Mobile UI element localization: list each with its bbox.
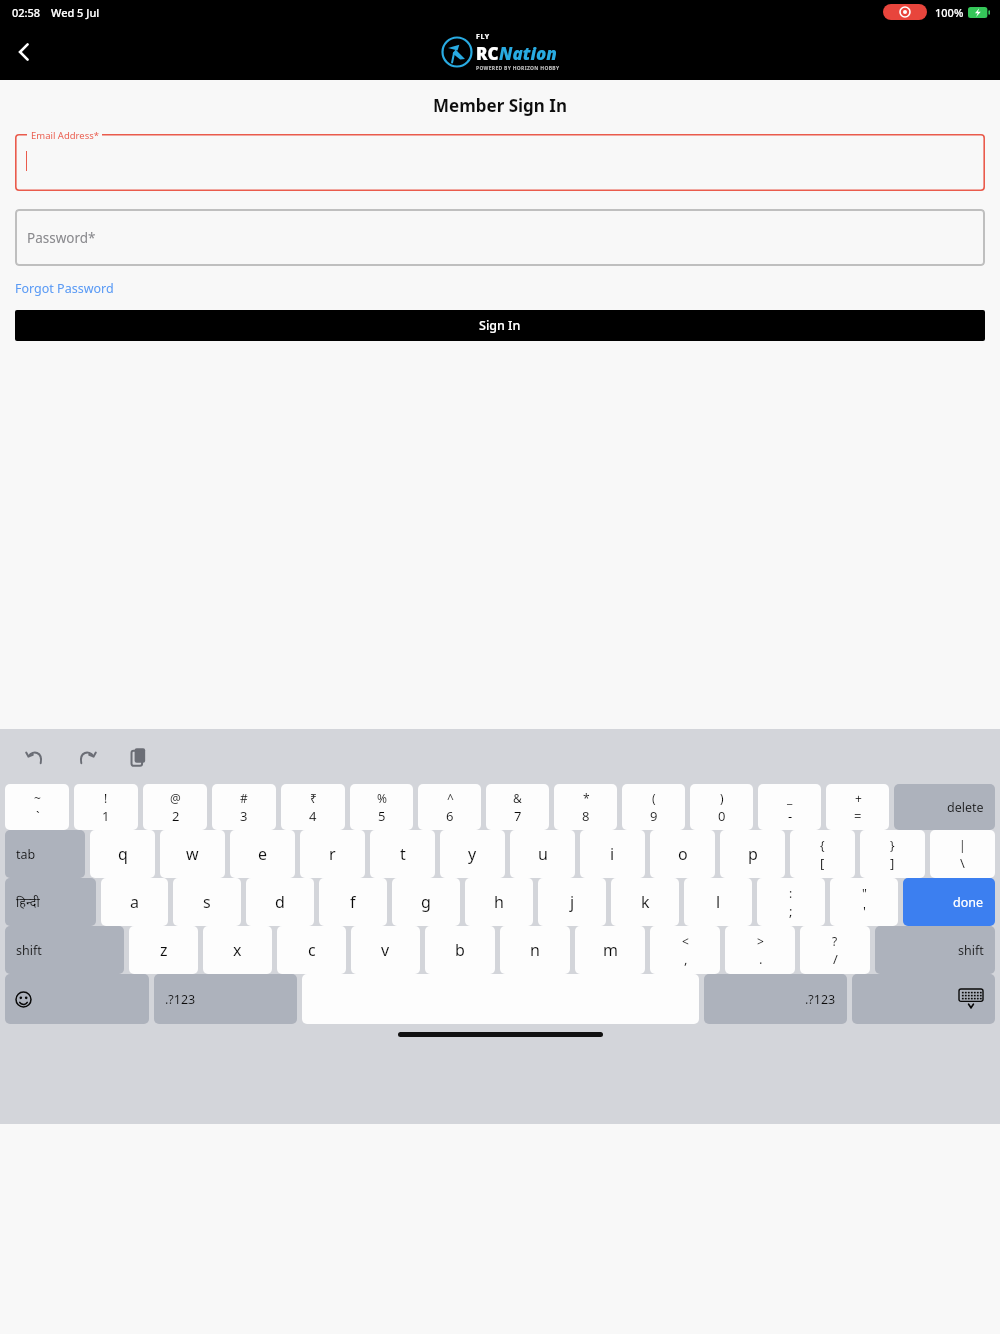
button[interactable]: Email Address* <box>15 134 985 191</box>
button[interactable]: & <box>486 784 549 830</box>
staticText: q <box>118 843 128 865</box>
button[interactable]: k <box>611 878 679 926</box>
staticText: delete <box>947 799 984 816</box>
staticText: n <box>530 939 540 961</box>
staticText: p <box>748 843 758 865</box>
button[interactable]: y <box>440 830 505 878</box>
button[interactable]: u <box>510 830 575 878</box>
button[interactable]: ! <box>74 784 138 830</box>
button[interactable]: d <box>246 878 314 926</box>
staticText: c <box>308 939 316 961</box>
button[interactable]: < <box>650 926 720 974</box>
button[interactable]: ^ <box>418 784 481 830</box>
button[interactable]: p <box>720 830 785 878</box>
staticText: Forgot Password <box>15 280 114 297</box>
button[interactable]: r <box>300 830 365 878</box>
staticText: . <box>759 950 763 968</box>
button[interactable]: c <box>277 926 346 974</box>
button[interactable]: हिन्दी <box>5 878 96 926</box>
button[interactable]: j <box>538 878 606 926</box>
button[interactable]: z <box>129 926 198 974</box>
button[interactable]: b <box>425 926 495 974</box>
staticText: Nation <box>499 42 557 65</box>
staticText: % <box>377 790 387 806</box>
button[interactable]: Forgot Password <box>15 280 114 297</box>
button[interactable]: ) <box>690 784 753 830</box>
button[interactable]: f <box>319 878 387 926</box>
button[interactable]: # <box>212 784 276 830</box>
staticText: h <box>494 891 504 913</box>
staticText: z <box>160 939 168 961</box>
button[interactable]: v <box>351 926 420 974</box>
staticText: Member Sign In <box>0 94 1000 117</box>
staticText: Sign In <box>479 317 521 334</box>
staticText: m <box>603 939 618 961</box>
button[interactable]: ? <box>800 926 870 974</box>
button[interactable]: l <box>684 878 752 926</box>
staticText: ( <box>652 790 656 806</box>
button[interactable]: q <box>90 830 155 878</box>
button[interactable]: Emoji keyboard <box>5 974 149 1024</box>
button[interactable]: Back <box>0 28 48 76</box>
button[interactable]: done <box>903 878 995 926</box>
button[interactable]: { <box>790 830 855 878</box>
button[interactable]: o <box>650 830 715 878</box>
button[interactable]: .?123 <box>154 974 297 1024</box>
staticText: 0 <box>718 807 726 825</box>
staticText: ? <box>832 933 838 949</box>
button[interactable]: x <box>203 926 272 974</box>
button[interactable]: : <box>757 878 825 926</box>
staticText: i <box>610 843 615 865</box>
staticText: 2 <box>172 807 180 825</box>
button[interactable]: t <box>370 830 435 878</box>
button[interactable]: m <box>575 926 645 974</box>
button[interactable]: h <box>465 878 533 926</box>
button[interactable]: n <box>500 926 570 974</box>
staticText: l <box>716 891 721 913</box>
staticText: 6 <box>446 807 454 825</box>
button[interactable]: delete <box>894 784 995 830</box>
button[interactable]: | <box>930 830 995 878</box>
button[interactable]: w <box>160 830 225 878</box>
staticText: 7 <box>514 807 522 825</box>
staticText: g <box>421 891 431 913</box>
staticText: Password* <box>27 229 96 247</box>
button[interactable]: ( <box>622 784 685 830</box>
button[interactable]: shift <box>875 926 995 974</box>
staticText: x <box>233 939 242 961</box>
button[interactable]: Redo <box>72 742 102 772</box>
button[interactable]: shift <box>5 926 124 974</box>
staticText: : <box>789 885 793 901</box>
button[interactable]: _ <box>758 784 821 830</box>
button[interactable]: ₹ <box>281 784 345 830</box>
button[interactable]: g <box>392 878 460 926</box>
button[interactable]: * <box>554 784 617 830</box>
button[interactable]: s <box>173 878 241 926</box>
button[interactable]: ~ <box>5 784 69 830</box>
button[interactable]: } <box>860 830 925 878</box>
staticText: } <box>890 837 895 853</box>
staticText: & <box>513 790 522 806</box>
button[interactable]: a <box>101 878 168 926</box>
button[interactable]: e <box>230 830 295 878</box>
staticText: ) <box>720 790 724 806</box>
button[interactable]: Sign In <box>15 310 985 341</box>
button[interactable]: % <box>350 784 413 830</box>
button[interactable]: Hide keyboard <box>852 974 995 1024</box>
button[interactable]: " <box>830 878 898 926</box>
staticText: / <box>833 950 838 968</box>
staticText: shift <box>16 942 42 959</box>
button[interactable]: i <box>580 830 645 878</box>
button[interactable]: > <box>725 926 795 974</box>
button[interactable]: tab <box>5 830 85 878</box>
button[interactable]: .?123 <box>704 974 847 1024</box>
button[interactable]: + <box>826 784 889 830</box>
staticText: हिन्दी <box>16 894 40 911</box>
button[interactable]: Password* <box>15 209 985 266</box>
staticText: f <box>350 891 356 913</box>
button[interactable]: @ <box>143 784 207 830</box>
button[interactable]: Undo <box>20 742 50 772</box>
button[interactable]: Paste <box>124 742 154 772</box>
staticText: .?123 <box>805 991 836 1008</box>
